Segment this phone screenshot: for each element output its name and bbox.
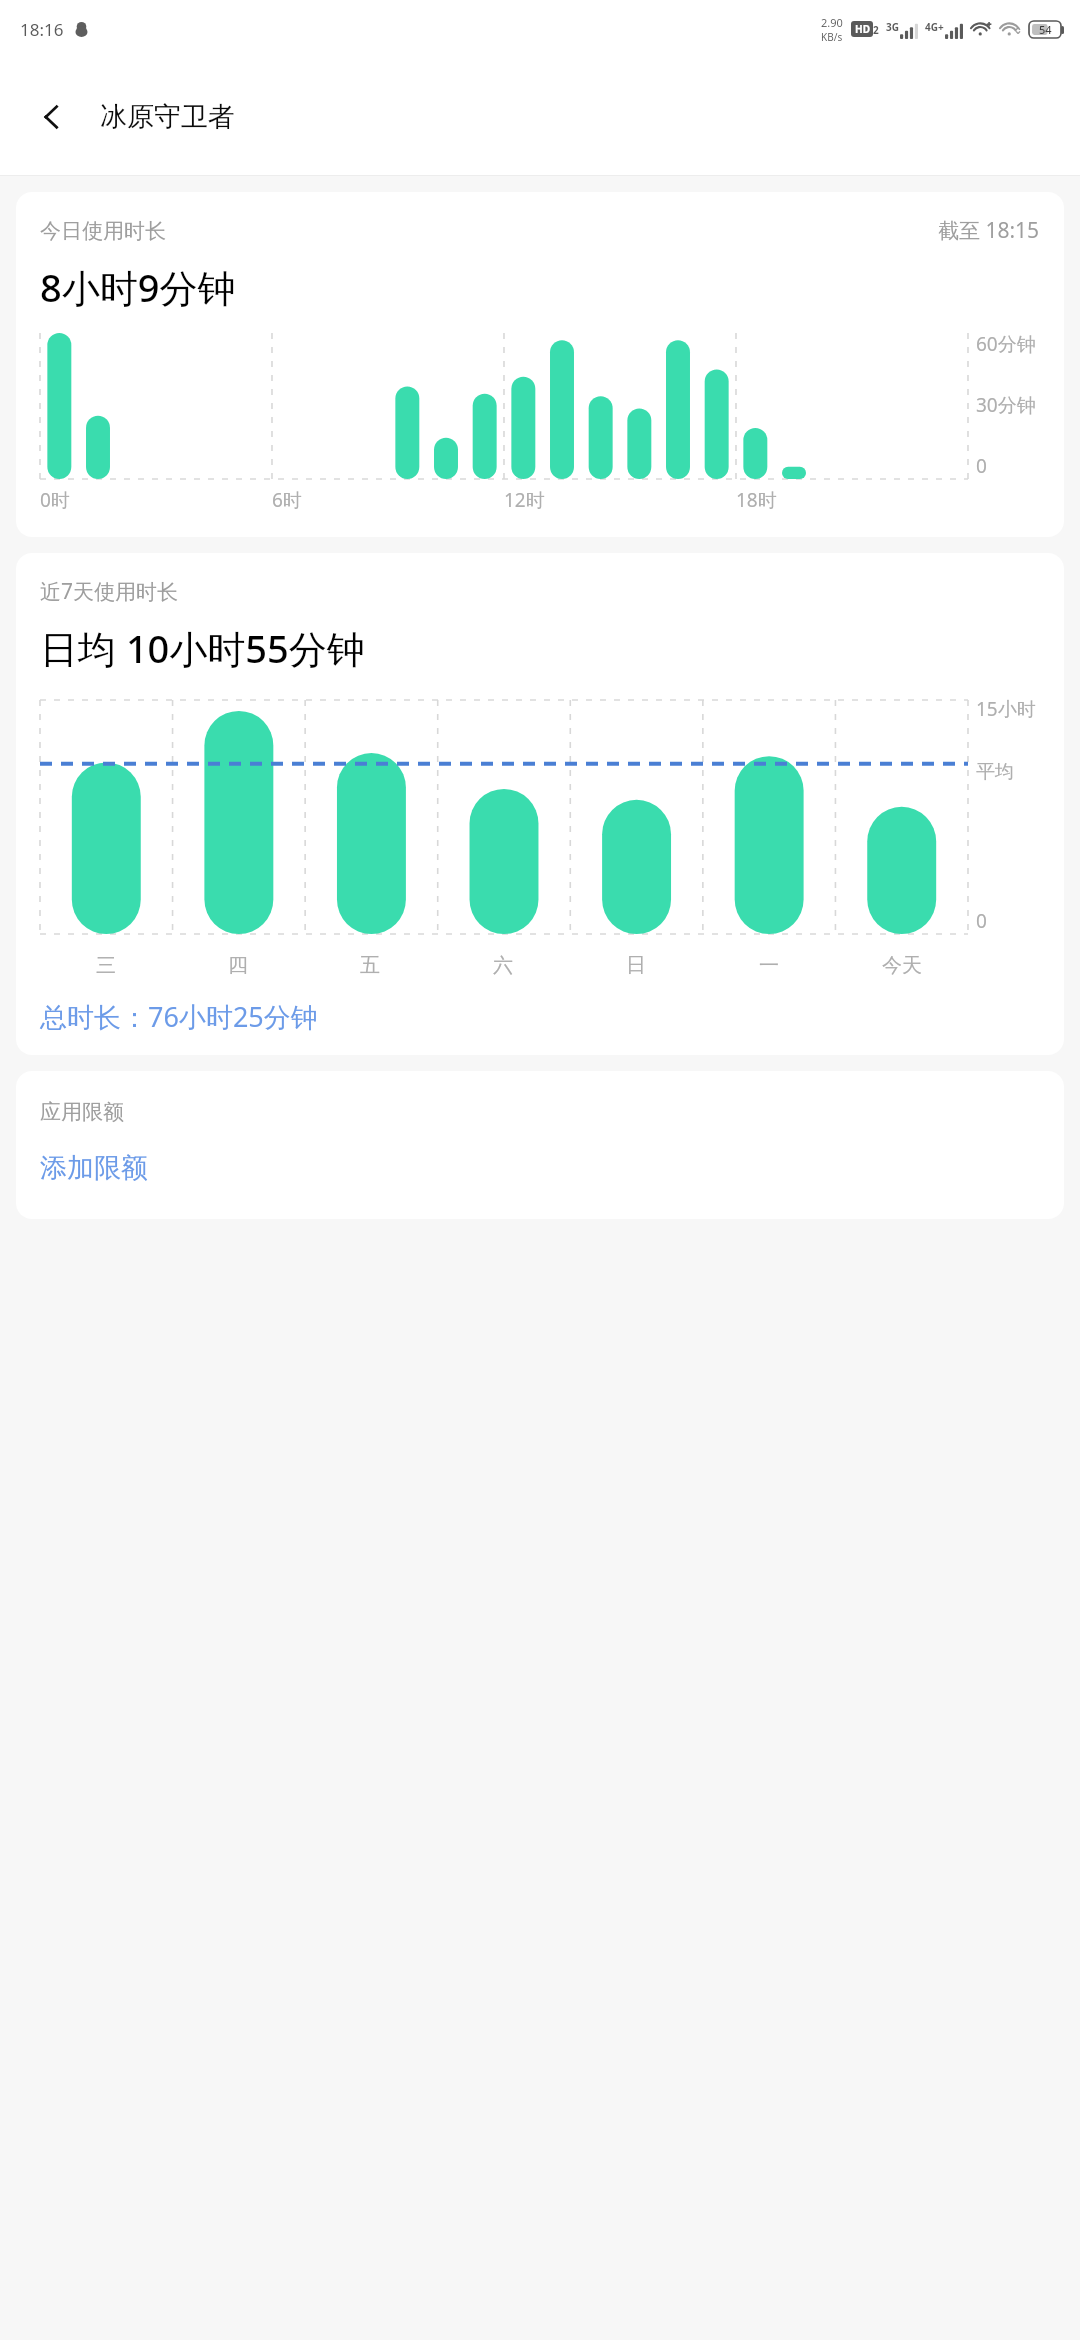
staticText: 添加限额	[40, 1151, 148, 1185]
staticText: 截至 18:15	[938, 216, 1040, 245]
staticText: 30分钟	[976, 392, 1036, 418]
staticText: 日	[626, 953, 646, 978]
staticText: 8小时9分钟	[40, 261, 236, 313]
staticText: 4G+	[925, 20, 944, 34]
staticText: 3G	[886, 20, 899, 34]
staticText: 0时	[40, 487, 70, 513]
staticText: 应用限额	[40, 1099, 124, 1125]
staticText: 六	[493, 953, 513, 978]
staticText: 12时	[504, 487, 545, 513]
button[interactable]: 添加限额	[16, 1147, 1064, 1219]
staticText: 0	[976, 908, 987, 934]
button[interactable]: 总时长：76小时25分钟	[16, 990, 1064, 1055]
staticText: 今天	[882, 953, 922, 978]
staticText: 五	[360, 953, 380, 978]
staticText: 一	[759, 953, 779, 978]
staticText: 54	[1039, 22, 1052, 37]
staticText: 2	[873, 23, 879, 37]
staticText: 0	[976, 453, 987, 479]
staticText: 18时	[736, 487, 777, 513]
staticText: 2.90	[821, 15, 843, 30]
staticText: 60分钟	[976, 331, 1036, 357]
staticText: 18:16	[20, 18, 64, 41]
staticText: 今日使用时长	[40, 218, 166, 244]
staticText: HD	[855, 22, 870, 36]
staticText: 15小时	[976, 696, 1036, 722]
staticText: 日均 10小时55分钟	[40, 622, 365, 674]
staticText: KB/s	[821, 30, 843, 44]
staticText: 平均	[976, 760, 1014, 784]
staticText: 四	[228, 953, 248, 978]
staticText: 总时长：76小时25分钟	[40, 998, 318, 1035]
staticText: 三	[96, 953, 116, 978]
staticText: 冰原守卫者	[100, 100, 235, 134]
staticText: 近7天使用时长	[40, 577, 179, 606]
staticText: 6时	[272, 487, 302, 513]
button[interactable]: Back	[24, 89, 80, 145]
